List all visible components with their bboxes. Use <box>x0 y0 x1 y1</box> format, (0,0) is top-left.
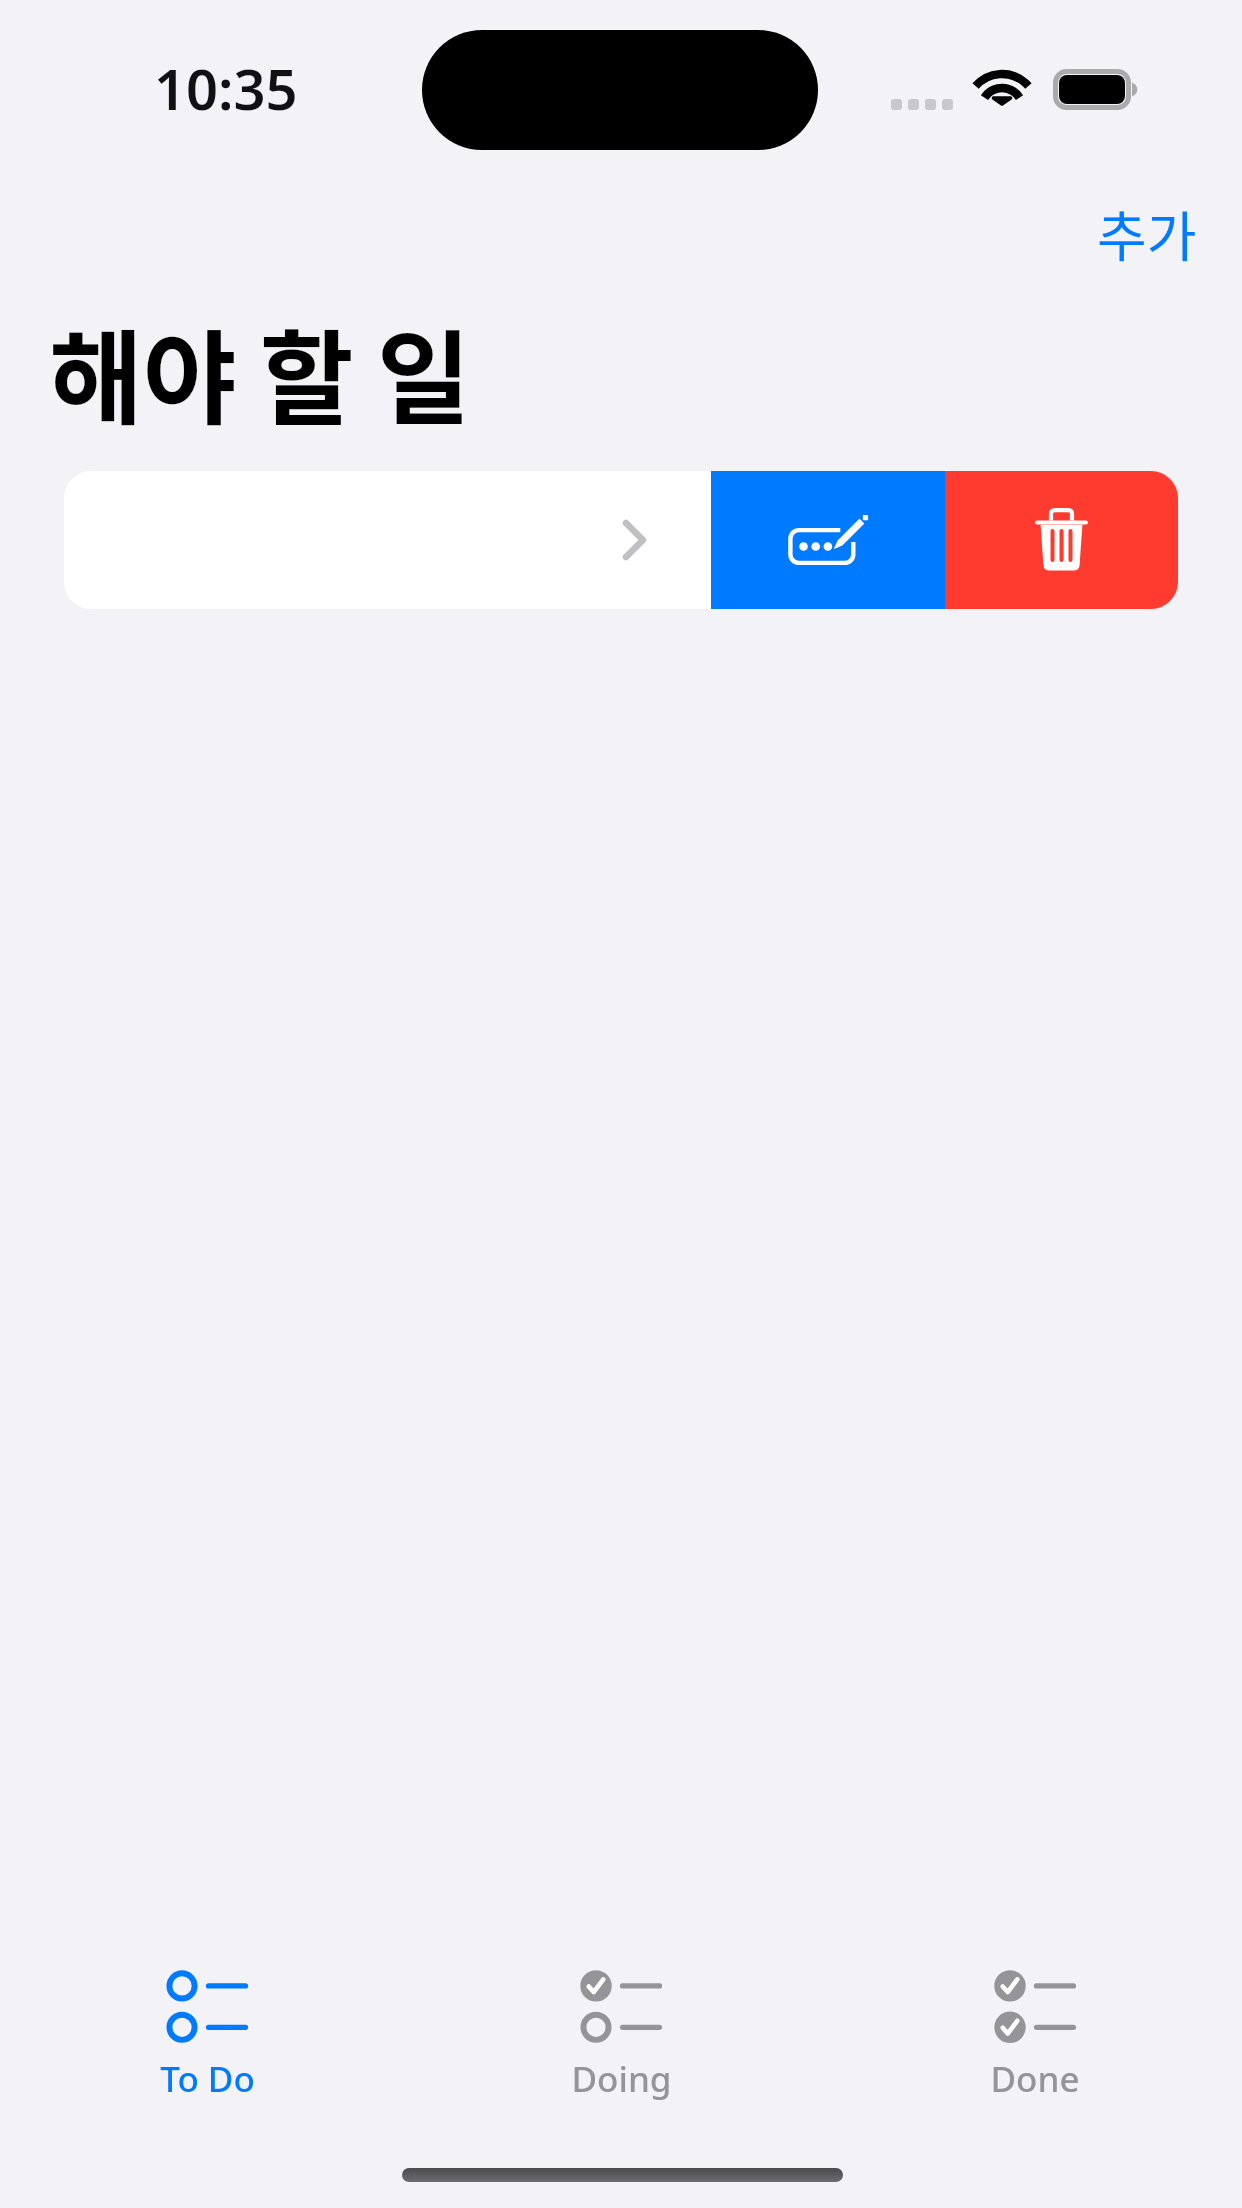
button[interactable]: Doing <box>414 1960 828 2100</box>
button[interactable]: 추가 <box>1067 176 1227 290</box>
button[interactable]: To Do <box>0 1960 414 2100</box>
button[interactable]: Delete <box>945 471 1178 609</box>
staticText: 해야 할 일 <box>49 298 471 446</box>
staticText: To Do <box>160 2055 255 2100</box>
staticText: Doing <box>571 2055 672 2100</box>
staticText: 추가 <box>1097 194 1197 272</box>
button[interactable]: Done <box>828 1960 1242 2100</box>
button[interactable]: Edit <box>711 471 945 609</box>
button[interactable]: Open task <box>64 471 711 609</box>
staticText: Done <box>990 2055 1080 2100</box>
staticText: 10:35 <box>154 50 298 126</box>
